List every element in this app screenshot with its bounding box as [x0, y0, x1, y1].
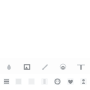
button[interactable]: Favourite [64, 74, 77, 90]
button[interactable]: Gallery [12, 74, 25, 90]
button[interactable]: Photo [18, 58, 36, 74]
button[interactable]: Adjust [54, 58, 72, 74]
button[interactable]: Apps [0, 74, 12, 90]
button[interactable]: Text [72, 58, 90, 74]
button[interactable]: Emoji [51, 74, 64, 90]
button[interactable]: Profile [77, 74, 90, 90]
button[interactable]: Fill [0, 58, 18, 74]
button[interactable]: Sliders [38, 74, 51, 90]
button[interactable]: Brush [36, 58, 54, 74]
button[interactable]: Sticker [25, 74, 38, 90]
